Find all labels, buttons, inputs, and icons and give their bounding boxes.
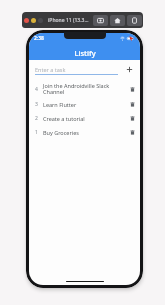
button[interactable]: Minimize	[31, 18, 36, 23]
button[interactable]: Zoom	[38, 18, 43, 23]
staticText: 3	[35, 101, 38, 108]
staticText: Learn Flutter	[43, 101, 124, 108]
staticText: Enter a task	[35, 66, 66, 73]
staticText: 1	[35, 129, 38, 136]
staticText: Create a tutorial	[43, 115, 124, 122]
button[interactable]: 3	[29, 97, 140, 111]
button[interactable]: Screenshot	[93, 15, 108, 26]
button[interactable]: Delete task	[124, 125, 140, 139]
button[interactable]: Delete task	[124, 111, 140, 125]
button[interactable]: Close	[24, 18, 29, 23]
staticText: 4	[35, 86, 38, 93]
staticText: Buy Groceries	[43, 129, 124, 136]
button[interactable]: Enter a task	[35, 64, 118, 74]
button[interactable]: Delete task	[124, 97, 140, 111]
button[interactable]: 1	[29, 125, 140, 139]
button[interactable]: Delete task	[124, 81, 140, 97]
staticText: iPhone 11 (13.3…	[48, 17, 89, 24]
button[interactable]: 4	[29, 81, 140, 97]
staticText: 2	[35, 115, 38, 122]
button[interactable]: Add task	[123, 63, 135, 75]
staticText: 2:38	[34, 35, 44, 42]
button[interactable]: Rotate	[127, 15, 142, 26]
button[interactable]: Home	[110, 15, 125, 26]
button[interactable]: 2	[29, 111, 140, 125]
staticText: Listify	[74, 48, 96, 58]
staticText: Join the Androidville Slack Channel	[43, 82, 124, 96]
